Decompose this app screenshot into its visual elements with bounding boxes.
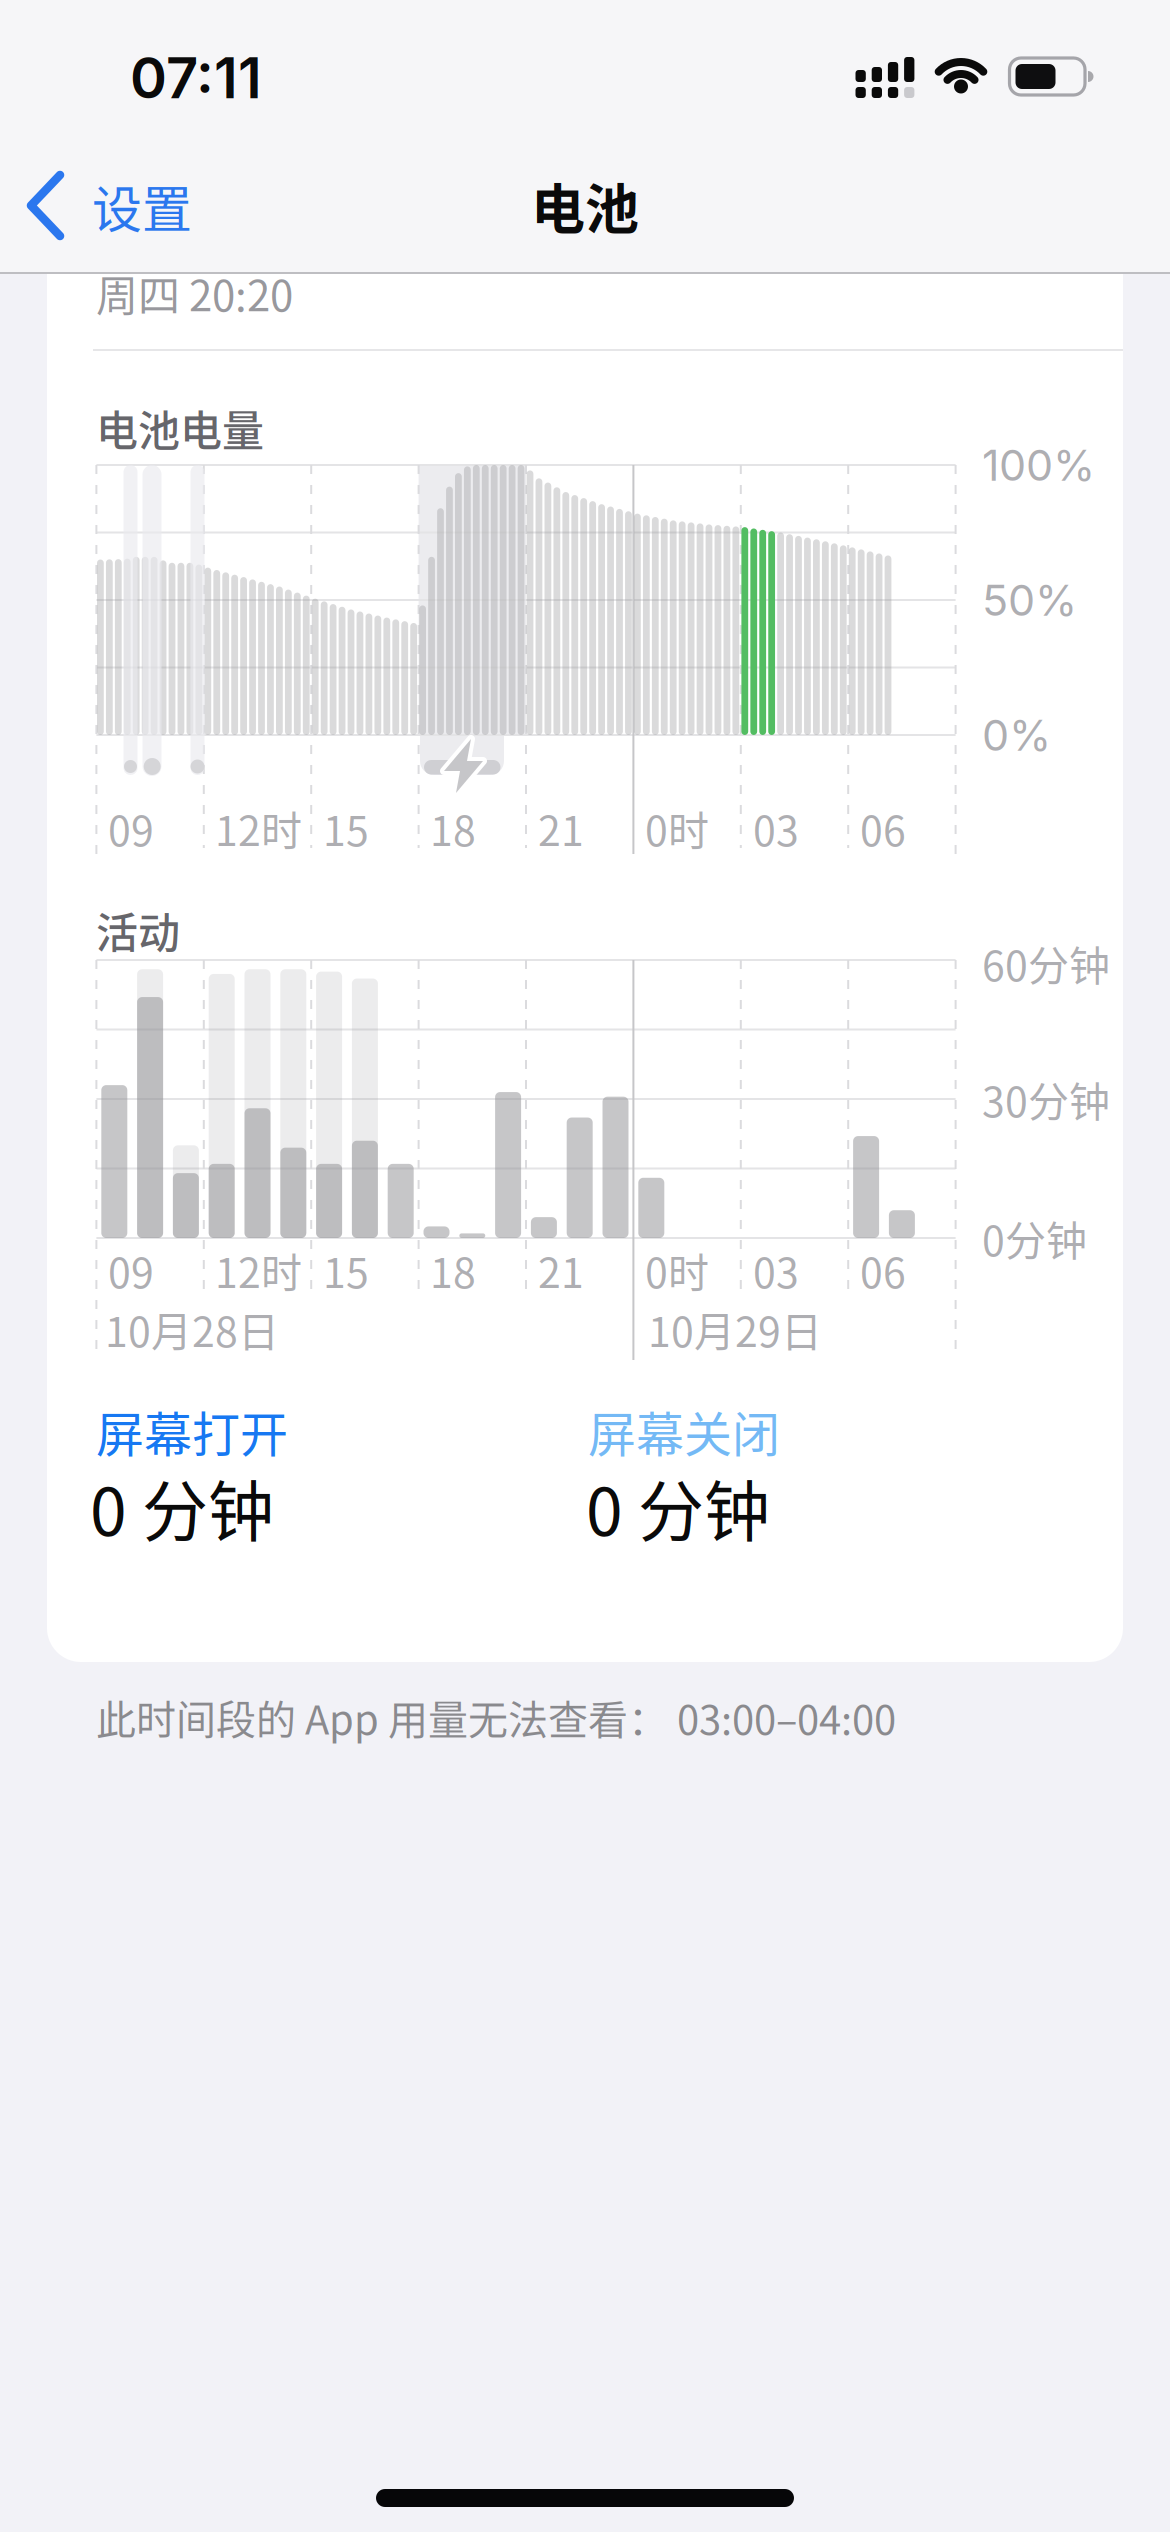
staticText: 0时 (645, 798, 709, 858)
staticText: 0分钟 (982, 1208, 1087, 1268)
staticText: 10月29日 (648, 1299, 822, 1359)
staticText: 18 (430, 1240, 476, 1300)
staticText: 07:11 (130, 44, 262, 112)
staticText: 09 (108, 798, 154, 858)
staticText: 03 (753, 1240, 799, 1300)
staticText: 50% (982, 574, 1077, 626)
staticText: 12时 (215, 798, 302, 858)
staticText: 0时 (645, 1240, 709, 1300)
staticText: 屏幕打开 (96, 1396, 288, 1466)
button[interactable]: 设置 (20, 152, 250, 262)
staticText: 设置 (92, 170, 192, 242)
staticText: 06 (860, 798, 906, 858)
staticText: 21 (538, 1240, 584, 1300)
staticText: 60分钟 (982, 933, 1110, 993)
staticText: 电池电量 (96, 398, 264, 458)
staticText: 15 (323, 798, 369, 858)
staticText: 15 (323, 1240, 369, 1300)
staticText: 10月28日 (105, 1299, 279, 1359)
staticText: 活动 (96, 900, 180, 960)
staticText: 18 (430, 798, 476, 858)
staticText: 0 分钟 (586, 1459, 770, 1555)
staticText: 30分钟 (982, 1069, 1110, 1129)
staticText: 21 (538, 798, 584, 858)
staticText: 屏幕关闭 (588, 1396, 780, 1466)
staticText: 03 (753, 798, 799, 858)
staticText: 此时间段的 App 用量无法查看： 03:00–04:00 (96, 1688, 896, 1746)
staticText: 100% (982, 439, 1095, 491)
staticText: 0 分钟 (90, 1459, 274, 1555)
staticText: 06 (860, 1240, 906, 1300)
staticText: 0% (982, 709, 1051, 761)
staticText: 电池 (531, 167, 639, 245)
staticText: 12时 (215, 1240, 302, 1300)
staticText: 周四 20:20 (96, 263, 293, 323)
staticText: 09 (108, 1240, 154, 1300)
